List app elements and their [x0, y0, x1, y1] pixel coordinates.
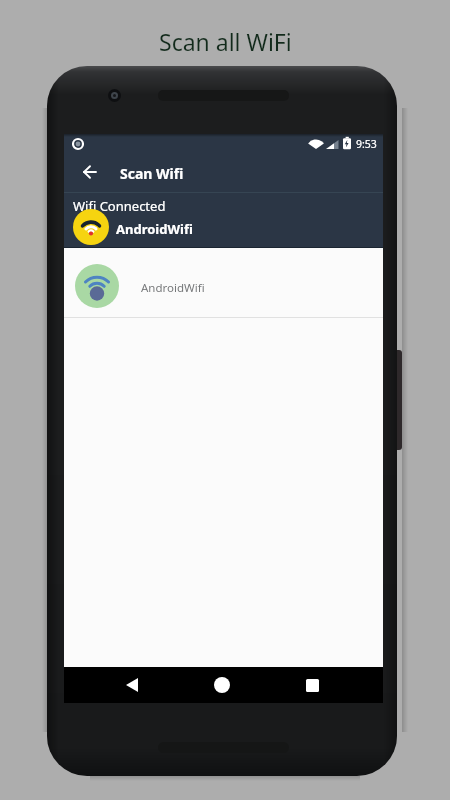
staticText: Wifi Connected: [73, 197, 166, 215]
staticText: AndroidWifi: [141, 280, 205, 296]
button[interactable]: [75, 157, 105, 187]
staticText: 9:53: [356, 137, 377, 151]
button[interactable]: [207, 670, 237, 700]
button[interactable]: AndroidWifi: [64, 248, 383, 317]
button[interactable]: Wifi Connected: [64, 193, 383, 248]
staticText: Scan all WiFi: [159, 26, 292, 57]
staticText: AndroidWifi: [116, 220, 193, 238]
staticText: Scan Wifi: [120, 164, 184, 183]
button[interactable]: [117, 670, 147, 700]
button[interactable]: [297, 670, 327, 700]
